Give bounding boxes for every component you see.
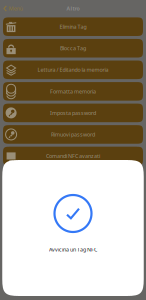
button[interactable]: Lettura / Editando la memoria <box>3 60 143 79</box>
staticText: Formatta memoria <box>50 88 96 95</box>
button[interactable]: Blocca Tag <box>3 39 143 58</box>
staticText: Elimina Tag <box>59 23 86 30</box>
button[interactable]: Rimuovi password <box>3 125 143 144</box>
button[interactable]: Formatta memoria <box>3 82 143 101</box>
staticText: Lettura / Editando la memoria <box>37 66 108 73</box>
staticText: Comandi NFC avanzati <box>46 152 100 160</box>
staticText: Altro <box>66 5 79 12</box>
button[interactable]: Comandi NFC avanzati <box>3 147 143 165</box>
button[interactable]: Menù <box>0 0 23 17</box>
staticText: Imposta password <box>50 109 96 116</box>
staticText: Blocca Tag <box>60 45 86 52</box>
button[interactable]: Elimina Tag <box>3 17 143 36</box>
button[interactable]: Imposta password <box>3 104 143 122</box>
staticText: Rimuovi password <box>51 131 95 138</box>
staticText: Menù <box>9 5 23 12</box>
staticText: Avvicina un Tag NFC <box>49 246 97 253</box>
